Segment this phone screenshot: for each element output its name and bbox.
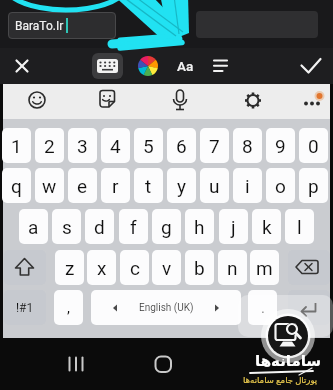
staticText: 2 [44,135,55,157]
button[interactable]: i [233,168,262,203]
button[interactable]: g [152,209,181,244]
staticText: d [94,216,105,238]
button[interactable]: Aa [171,52,199,80]
staticText: پورتال جامع سامانه‌ها [243,374,318,386]
button[interactable]: 1 [2,128,31,163]
button[interactable]: j [219,209,248,244]
button[interactable]: 0 [299,128,328,163]
staticText: j [231,216,236,238]
button[interactable]: 9 [266,128,295,163]
button[interactable]: q [2,168,31,203]
button[interactable]: x [87,250,116,285]
button[interactable] [4,250,46,285]
staticText: b [194,257,205,279]
button[interactable]: r [101,168,130,203]
button[interactable]: h [185,209,214,244]
staticText: 0 [308,135,319,157]
button[interactable] [288,290,330,325]
button[interactable]: 8 [233,128,262,163]
button[interactable]: !#1 [4,290,46,325]
button[interactable]: y [167,168,196,203]
staticText: Aa [177,58,194,74]
staticText: سامانه‌ها [255,352,322,369]
staticText: t [145,175,152,197]
staticText: . [261,299,265,317]
button[interactable]: 4 [101,128,130,163]
staticText: 7 [209,135,220,157]
button[interactable]: 7 [200,128,229,163]
staticText: r [112,175,119,197]
staticText: 5 [143,135,154,157]
button[interactable]: 2 [35,128,64,163]
staticText: l [297,216,302,238]
button[interactable] [288,250,330,285]
staticText: z [65,257,75,279]
button[interactable]: s [52,209,81,244]
staticText: n [227,257,238,279]
button[interactable]: l [285,209,314,244]
staticText: BaraTo.Ir [15,19,64,33]
button[interactable]: e [68,168,97,203]
staticText: k [262,216,272,238]
button[interactable]: 5 [134,128,163,163]
button[interactable]: . [248,290,277,325]
staticText: a [28,216,39,238]
button[interactable]: p [299,168,328,203]
staticText: 6 [176,135,187,157]
staticText: e [77,175,88,197]
button[interactable]: c [120,250,149,285]
button[interactable]: v [152,250,181,285]
button[interactable]: k [252,209,281,244]
button[interactable]: z [55,250,84,285]
button[interactable]: t [134,168,163,203]
staticText: f [130,216,137,238]
button[interactable]: a [19,209,48,244]
button[interactable]: u [200,168,229,203]
staticText: x [97,257,107,279]
staticText: m [256,257,273,279]
button[interactable]: BaraTo.Ir [8,12,116,39]
button[interactable]: f [119,209,148,244]
button[interactable]: w [35,168,64,203]
staticText: p [308,175,319,197]
button[interactable]: o [266,168,295,203]
staticText: h [194,216,205,238]
staticText: !#1 [16,301,34,315]
staticText: c [130,257,140,279]
staticText: 1 [11,135,22,157]
button[interactable]: d [85,209,114,244]
staticText: q [11,175,22,197]
staticText: 9 [275,135,286,157]
staticText: English (UK) [139,302,194,314]
staticText: 4 [110,135,121,157]
button[interactable]: b [185,250,214,285]
button[interactable]: , [54,290,83,325]
staticText: o [275,175,286,197]
staticText: , [67,299,70,317]
staticText: u [209,175,220,197]
staticText: v [162,257,172,279]
button[interactable]: 3 [68,128,97,163]
staticText: i [245,175,250,197]
staticText: 8 [242,135,253,157]
staticText: w [42,175,57,197]
button[interactable]: 6 [167,128,196,163]
button[interactable]: m [250,250,279,285]
staticText: 3 [77,135,88,157]
staticText: g [161,216,172,238]
staticText: y [177,175,186,197]
button[interactable] [91,290,241,325]
button[interactable]: n [218,250,247,285]
staticText: s [62,216,72,238]
